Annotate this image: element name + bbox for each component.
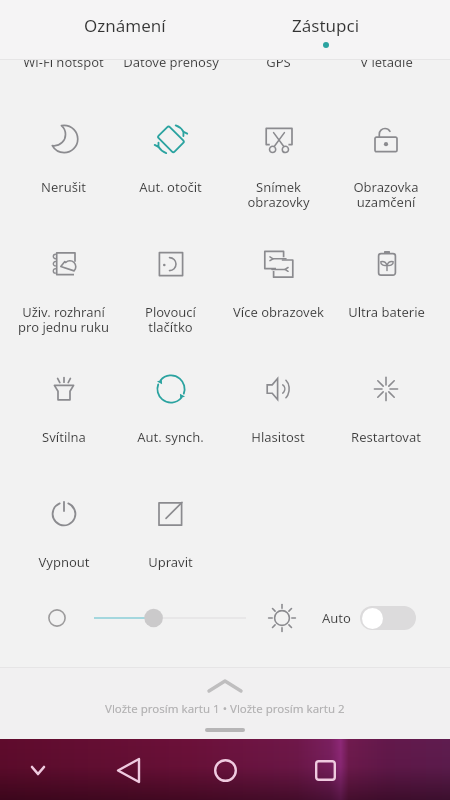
button[interactable]: Datové přenosy bbox=[117, 0, 224, 96]
staticText: Plovoucí tlačítko bbox=[145, 303, 196, 336]
button[interactable]: Wi-Fi hotspot bbox=[10, 0, 117, 96]
button[interactable]: GPS bbox=[224, 0, 332, 96]
staticText: Oznámení bbox=[84, 14, 166, 37]
button[interactable]: Upravit bbox=[117, 471, 224, 596]
staticText: Zástupci bbox=[292, 14, 360, 37]
button[interactable]: V letadle bbox=[332, 0, 440, 96]
button[interactable]: Hide bbox=[21, 753, 55, 787]
button[interactable]: Obrazovka uzamčení bbox=[332, 96, 440, 221]
staticText: Vložte prosím kartu 1 • Vložte prosím ka… bbox=[105, 701, 345, 717]
staticText: Aut. otočit bbox=[139, 178, 202, 196]
staticText: Hlasitost bbox=[251, 428, 305, 446]
button[interactable]: Aut. otočit bbox=[117, 96, 224, 221]
staticText: Obrazovka uzamčení bbox=[353, 178, 419, 211]
button[interactable]: Nerušit bbox=[10, 96, 117, 221]
button[interactable]: Oznámení bbox=[24, 0, 225, 60]
button[interactable]: Auto bbox=[322, 598, 416, 638]
button[interactable]: Snímek obrazovky bbox=[224, 96, 332, 221]
button[interactable]: Vypnout bbox=[10, 471, 117, 596]
staticText: Svítilna bbox=[42, 428, 86, 446]
button[interactable]: Recents bbox=[301, 746, 349, 794]
button[interactable]: Aut. synch. bbox=[117, 346, 224, 471]
staticText: Nerušit bbox=[41, 178, 86, 196]
button[interactable]: Hlasitost bbox=[224, 346, 332, 471]
staticText: Restartovat bbox=[351, 428, 421, 446]
staticText: Více obrazovek bbox=[233, 303, 324, 321]
button[interactable]: Více obrazovek bbox=[224, 221, 332, 346]
button[interactable]: High brightness bbox=[264, 600, 300, 636]
staticText: Auto bbox=[322, 609, 351, 627]
staticText: Upravit bbox=[148, 553, 193, 571]
button[interactable]: Zástupci bbox=[225, 0, 426, 60]
button[interactable]: Back bbox=[104, 746, 152, 794]
button[interactable]: Svítilna bbox=[10, 346, 117, 471]
staticText: Vypnout bbox=[38, 553, 90, 571]
staticText: V letadle bbox=[360, 53, 413, 71]
staticText: Snímek obrazovky bbox=[247, 178, 310, 211]
button[interactable]: Plovoucí tlačítko bbox=[117, 221, 224, 346]
button[interactable]: Home bbox=[201, 746, 249, 794]
button[interactable]: Restartovat bbox=[332, 346, 440, 471]
staticText: Uživ. rozhraní pro jednu ruku bbox=[18, 303, 109, 336]
staticText: Ultra baterie bbox=[348, 303, 425, 321]
button[interactable]: Ultra baterie bbox=[332, 221, 440, 346]
button[interactable]: Brightness bbox=[84, 598, 256, 638]
staticText: Wi-Fi hotspot bbox=[23, 53, 104, 71]
button[interactable]: Low brightness bbox=[40, 601, 74, 635]
button[interactable]: Uživ. rozhraní pro jednu ruku bbox=[10, 221, 117, 346]
staticText: Aut. synch. bbox=[137, 428, 204, 446]
staticText: Datové přenosy bbox=[123, 53, 219, 71]
button[interactable]: Expand bbox=[201, 675, 249, 697]
staticText: GPS bbox=[266, 53, 291, 71]
